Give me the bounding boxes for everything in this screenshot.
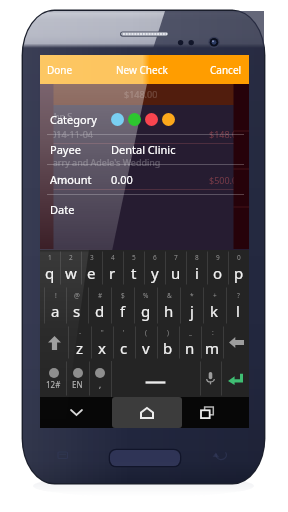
staticText: Harry and Adele's Wedding (46, 156, 161, 168)
staticText: e (87, 263, 96, 283)
staticText: ? (237, 291, 240, 300)
staticText: 2 (69, 253, 73, 262)
button[interactable]: 1 (40, 250, 60, 286)
staticText: @ (74, 291, 80, 300)
staticText: 3 (90, 253, 94, 262)
staticText: + (213, 291, 217, 300)
staticText: 12# (46, 379, 61, 390)
staticText: x (98, 338, 106, 358)
button[interactable]: ? (226, 286, 249, 325)
staticText: t (131, 263, 137, 283)
staticText: Category (50, 112, 97, 127)
staticText: $148.00 (209, 128, 243, 140)
staticText: a (51, 301, 60, 321)
staticText: $500.00 (209, 174, 243, 186)
staticText: 6 (153, 253, 157, 262)
button[interactable]: ( (135, 325, 157, 360)
button[interactable]: ) (157, 325, 179, 360)
button[interactable]: * (180, 286, 203, 325)
button[interactable]: Shift (40, 325, 68, 360)
button[interactable]: + (203, 286, 226, 325)
button[interactable]: Date (40, 195, 249, 224)
staticText: 2014-11-04 (46, 128, 93, 140)
staticText: 9 (216, 253, 220, 262)
staticText: k (210, 301, 219, 321)
button[interactable]: Hide keyboard (40, 397, 112, 428)
button[interactable]: Payee (40, 135, 249, 164)
button[interactable]: Settings (89, 360, 111, 397)
staticText: 1 (48, 253, 52, 262)
button[interactable]: Backspace (223, 325, 249, 360)
staticText: i (195, 263, 199, 283)
button[interactable]: : (201, 325, 223, 360)
button[interactable]: 7 (165, 250, 186, 286)
staticText: 0.00 (111, 172, 133, 187)
staticText: w (65, 263, 77, 283)
button[interactable]: 8 (186, 250, 207, 286)
button[interactable]: 6 (144, 250, 165, 286)
button[interactable]: Amount (40, 165, 249, 194)
button[interactable]: Symbols (40, 360, 66, 397)
button[interactable]: Enter (221, 360, 249, 397)
staticText: g (141, 301, 151, 321)
button[interactable]: 5 (123, 250, 144, 286)
staticText: r (109, 263, 116, 283)
staticText: ! (55, 291, 57, 300)
staticText: o (213, 263, 223, 283)
staticText: & (167, 291, 172, 300)
staticText: New Check (116, 63, 168, 77)
staticText: Cancel (210, 63, 242, 77)
button[interactable] (111, 113, 124, 126)
button[interactable] (162, 113, 175, 126)
button[interactable]: Voice input (200, 360, 221, 397)
staticText: % (143, 291, 149, 300)
button[interactable]: ' (113, 325, 135, 360)
button[interactable]: 0 (228, 250, 249, 286)
button[interactable]: 3 (81, 250, 102, 286)
button[interactable] (128, 113, 141, 126)
button[interactable]: @ (66, 286, 88, 325)
staticText: 7 (174, 253, 178, 262)
staticText: 8 (195, 253, 199, 262)
staticText: : (212, 328, 214, 337)
staticText: Dental Clinic (111, 142, 176, 157)
button[interactable]: 9 (207, 250, 228, 286)
staticText: EN (72, 379, 83, 390)
staticText: Date (50, 202, 75, 217)
staticText: " (101, 328, 104, 337)
staticText: p (234, 263, 244, 283)
button[interactable]: " (91, 325, 113, 360)
button[interactable]: Recent apps (182, 397, 249, 428)
button[interactable]: - (68, 325, 91, 360)
staticText: f (120, 301, 126, 321)
button[interactable]: Cancel (203, 56, 249, 84)
button[interactable]: % (134, 286, 157, 325)
staticText: h (164, 301, 174, 321)
button[interactable]: Space (111, 360, 200, 397)
button[interactable]: Home (112, 397, 182, 428)
staticText: ( (145, 328, 147, 337)
staticText: q (45, 263, 55, 283)
staticText: , (99, 379, 102, 390)
staticText: v (142, 338, 150, 358)
button[interactable] (145, 113, 158, 126)
button[interactable]: 2 (60, 250, 81, 286)
staticText: Payee (50, 142, 81, 157)
button[interactable]: 4 (102, 250, 123, 286)
button[interactable]: $ (111, 286, 134, 325)
button[interactable]: Category (40, 105, 249, 134)
staticText: $148.00 (124, 88, 158, 100)
staticText: * (190, 291, 194, 300)
button[interactable]: _ (179, 325, 201, 360)
button[interactable]: ! (44, 286, 66, 325)
button[interactable]: Language (66, 360, 89, 397)
button[interactable]: Done (40, 56, 80, 84)
staticText: n (185, 338, 195, 358)
staticText: 2014-1 (46, 174, 75, 186)
button[interactable]: & (157, 286, 180, 325)
staticText: d (95, 301, 105, 321)
staticText: Amount (50, 172, 92, 187)
button[interactable]: # (88, 286, 111, 325)
staticText: u (171, 263, 181, 283)
